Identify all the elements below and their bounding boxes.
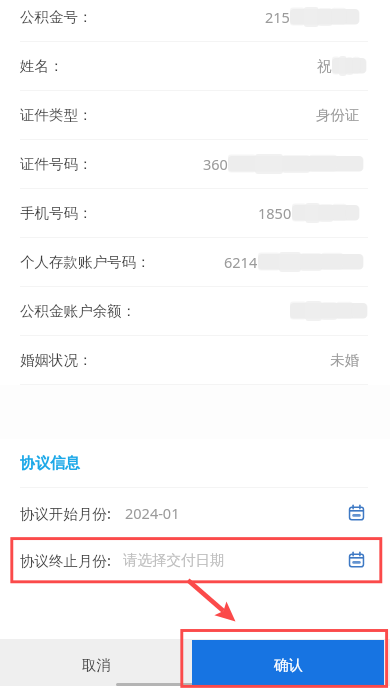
staticText: 确认 [274, 656, 303, 674]
button[interactable]: 确认 [192, 640, 384, 686]
button[interactable]: 个人存款账户号码： [0, 238, 390, 287]
staticText: 证件号码： [20, 155, 93, 173]
button[interactable]: 手机号码： [0, 189, 390, 238]
button[interactable]: 婚姻状况： [0, 336, 390, 385]
staticText: 公积金账户余额： [20, 302, 136, 320]
button[interactable]: 姓名： [0, 42, 390, 91]
staticText: 姓名： [20, 57, 64, 75]
staticText: 215 [265, 7, 290, 27]
staticText: 祝 [317, 57, 332, 75]
button[interactable]: 取消 [0, 639, 192, 686]
staticText: 婚姻状况： [20, 351, 93, 369]
staticText: 取消 [82, 656, 111, 674]
staticText: 协议信息 [20, 454, 80, 473]
staticText: 公积金号： [20, 8, 93, 26]
button[interactable]: 协议终止月份: [0, 537, 390, 582]
staticText: 个人存款账户号码： [20, 253, 151, 271]
button[interactable]: 证件号码： [0, 140, 390, 189]
staticText: 协议终止月份: [20, 550, 111, 570]
button[interactable]: 证件类型： [0, 91, 390, 140]
other: 选择日期 [348, 551, 365, 568]
staticText: 手机号码： [20, 204, 93, 222]
staticText: 未婚 [330, 351, 359, 369]
staticText: 6214 [224, 252, 258, 272]
staticText: 请选择交付日期 [123, 551, 225, 569]
button[interactable]: 协议开始月份: [0, 488, 390, 537]
staticText: 1850 [258, 203, 292, 223]
other: 选择日期 [348, 504, 365, 521]
button[interactable]: 公积金号： [0, 0, 390, 42]
staticText: 协议开始月份: [20, 503, 111, 523]
staticText: 证件类型： [20, 106, 93, 124]
button[interactable]: 公积金账户余额： [0, 287, 390, 336]
staticText: 360 [203, 154, 228, 174]
staticText: 身份证 [316, 106, 360, 124]
staticText: 2024-01 [125, 503, 180, 523]
